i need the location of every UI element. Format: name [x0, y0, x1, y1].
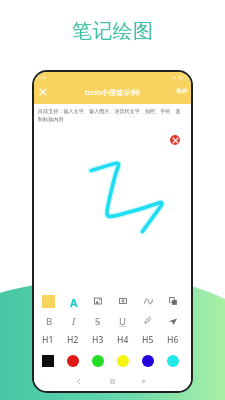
- button[interactable]: Clear drawing: [170, 135, 180, 145]
- staticText: H2: [67, 334, 79, 346]
- staticText: S: [95, 315, 101, 327]
- staticText: 笔记绘图: [72, 19, 154, 44]
- button[interactable]: Back: [71, 374, 85, 388]
- staticText: H4: [117, 334, 129, 346]
- button[interactable]: H1: [41, 334, 55, 346]
- button[interactable]: I: [68, 315, 80, 327]
- button[interactable]: Link: [142, 315, 154, 327]
- button[interactable]: Yellow: [117, 355, 129, 367]
- button[interactable]: U: [117, 315, 129, 327]
- button[interactable]: Red: [67, 355, 79, 367]
- button[interactable]: Recents: [136, 374, 150, 388]
- staticText: B: [46, 315, 53, 327]
- button[interactable]: S: [92, 315, 104, 327]
- button[interactable]: Camera: [117, 295, 129, 307]
- staticText: 7:46: [38, 75, 46, 80]
- staticText: 4G ▮▮ ▯: [171, 75, 187, 80]
- staticText: A: [70, 295, 78, 308]
- button[interactable]: H2: [66, 334, 80, 346]
- button[interactable]: H4: [116, 334, 130, 346]
- button[interactable]: H6: [166, 334, 180, 346]
- button[interactable]: Cyan: [167, 355, 179, 367]
- button[interactable]: Send: [167, 315, 179, 327]
- staticText: U: [119, 315, 127, 327]
- staticText: 保存: [176, 87, 188, 94]
- button[interactable]: Home: [105, 374, 119, 388]
- button[interactable]: H5: [141, 334, 155, 346]
- button[interactable]: Draw: [142, 295, 154, 307]
- button[interactable]: H3: [91, 334, 105, 346]
- staticText: H1: [42, 334, 54, 346]
- staticText: I: [72, 315, 76, 327]
- button[interactable]: 保存: [176, 87, 188, 94]
- staticText: H3: [92, 334, 104, 346]
- button[interactable]: B: [43, 315, 55, 327]
- button[interactable]: Blue: [142, 355, 154, 367]
- staticText: H6: [167, 334, 179, 346]
- staticText: todo小便签示例!: [85, 87, 141, 97]
- button[interactable]: Green: [92, 355, 104, 367]
- staticText: 目前支持：输入文字、输入图片、语音转文字、拍照、手绘、复制粘贴内容: [38, 108, 182, 122]
- button[interactable]: Copy: [167, 295, 179, 307]
- button[interactable]: Insert image: [92, 295, 104, 307]
- staticText: H5: [142, 334, 154, 346]
- button[interactable]: Close: [36, 85, 50, 99]
- button[interactable]: A: [67, 295, 80, 308]
